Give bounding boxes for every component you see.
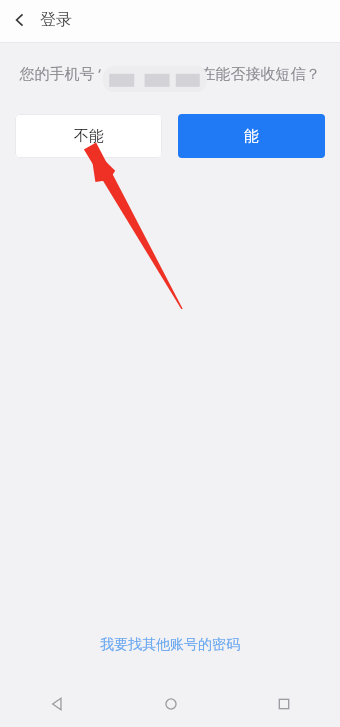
button[interactable]: 不能 xyxy=(15,114,162,158)
staticText: 不能 xyxy=(74,127,104,146)
staticText: 登录 xyxy=(40,10,72,30)
staticText: 能 xyxy=(244,127,259,146)
staticText: 您的手机号 ‘ ’现在能否接收短信？ xyxy=(16,63,324,83)
button[interactable]: Back xyxy=(0,680,114,727)
button[interactable]: Home xyxy=(114,680,227,727)
button[interactable]: 能 xyxy=(178,114,325,158)
button[interactable]: 我要找其他账号的密码 xyxy=(0,636,340,654)
button[interactable]: Recents xyxy=(227,680,340,727)
button[interactable]: Back xyxy=(0,0,40,40)
staticText: 我要找其他账号的密码 xyxy=(100,636,240,654)
